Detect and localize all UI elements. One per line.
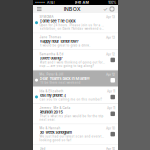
staticText: INBOX — [64, 6, 81, 12]
staticText: coffee outing? — [39, 56, 62, 61]
staticText: Apr 10 — [106, 126, 115, 130]
staticText: It would be great to grab a drink. — [39, 44, 90, 47]
staticText: Reunion 2015 — [39, 110, 62, 114]
staticText: That's what my plan would be for the tri… — [39, 114, 103, 118]
staticText: cup — are you going to tag along? — [39, 64, 94, 68]
button[interactable]: Dad — [33, 145, 118, 150]
staticText: Matt and I were thinking of going out fo… — [39, 60, 105, 64]
staticText: We just had our latest scan and everythi… — [39, 135, 105, 138]
staticText: Me & Hannah — [39, 126, 60, 130]
staticText: Apr 13 — [106, 15, 115, 19]
staticText: Open for 24 hours. Please join us for a … — [39, 23, 105, 27]
staticText: Apr 11 — [107, 106, 115, 110]
staticText: Apr 10 — [106, 147, 115, 150]
button[interactable]: Ida & Elizabeth — [33, 87, 118, 103]
staticText: next year. — [39, 118, 55, 121]
staticText: Dad — [39, 147, 45, 150]
staticText: Apr 12 — [106, 52, 115, 56]
staticText: Apr 12 — [106, 73, 115, 76]
staticText: 100% — [108, 0, 116, 5]
staticText: Come see The Clock — [39, 19, 75, 23]
staticText: ••••• AT&T — [35, 0, 55, 5]
staticText: lost my phone :( — [39, 93, 65, 98]
staticText: Apr 11 — [107, 89, 115, 93]
staticText: Me, Peter & Jill — [39, 73, 63, 76]
button[interactable]: Me & Hannah — [33, 124, 118, 144]
staticText: Apr 13 — [106, 35, 115, 39]
staticText: Ida & Elizabeth — [39, 89, 63, 93]
staticText: SFMOMA — [39, 15, 53, 19]
staticText: Happy hour tomorrow? — [39, 39, 78, 44]
button[interactable]: Samantha & Ed — [33, 50, 118, 70]
staticText: I'll be there next weekend — [39, 81, 80, 84]
staticText: Dear Team's back in Miami!!! — [39, 76, 89, 81]
staticText: Samantha & Ed — [39, 52, 63, 56]
button[interactable]: Compose — [109, 6, 115, 12]
staticText: 9:41 AM — [74, 0, 88, 5]
staticText: looking good so far! — [39, 138, 71, 142]
button[interactable]: Jane Thomas — [33, 33, 118, 49]
staticText: Jeremy, Me & Carla — [39, 106, 70, 110]
staticText: exhibition, on Bank Holiday weekend only… — [39, 27, 105, 30]
button[interactable]: Me, Peter & Jill — [33, 70, 118, 87]
button[interactable]: Select — [102, 5, 109, 13]
button[interactable]: SFMOMA — [33, 13, 118, 33]
staticText: can you try calling me on this number? — [39, 98, 102, 101]
button[interactable]: Menu — [36, 6, 42, 12]
staticText: 30 week sonogram — [39, 130, 71, 135]
button[interactable]: Jeremy, Me & Carla — [33, 104, 118, 124]
staticText: ✓ — [103, 6, 108, 12]
staticText: Jane Thomas — [39, 35, 61, 39]
